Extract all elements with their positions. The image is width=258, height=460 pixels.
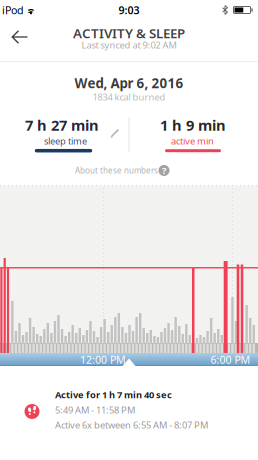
button[interactable]: Active for 1 h 7 min 40 sec xyxy=(0,366,258,460)
button[interactable] xyxy=(5,23,35,51)
staticText: iPod xyxy=(2,3,24,17)
staticText: About these numbers xyxy=(75,165,158,176)
staticText: 5:49 AM - 11:58 PM xyxy=(55,404,135,416)
staticText: ? xyxy=(162,164,166,177)
staticText: 6:00 PM xyxy=(210,352,250,367)
staticText: 1 h 9 min xyxy=(160,115,226,135)
staticText: Wed, Apr 6, 2016 xyxy=(74,74,183,92)
staticText: 1834 kcal burned xyxy=(92,91,165,103)
staticText: 7 h 27 min xyxy=(25,115,99,135)
staticText: Active for 1 h 7 min 40 sec xyxy=(55,388,172,401)
staticText: active min xyxy=(171,135,214,147)
button[interactable]: 12:00 PM xyxy=(0,353,258,366)
button[interactable]: 7 h 27 min xyxy=(0,113,129,156)
staticText: sleep time xyxy=(44,135,87,147)
staticText: Active 6x between 6:55 AM - 8:07 PM xyxy=(55,419,208,431)
button[interactable]: About these numbers xyxy=(0,161,258,180)
staticText: Last synced at 9:02 AM xyxy=(81,39,176,51)
staticText: 12:00 PM xyxy=(80,352,126,367)
staticText: 9:03 xyxy=(118,3,139,17)
staticText: ACTIVITY & SLEEP xyxy=(73,24,185,42)
